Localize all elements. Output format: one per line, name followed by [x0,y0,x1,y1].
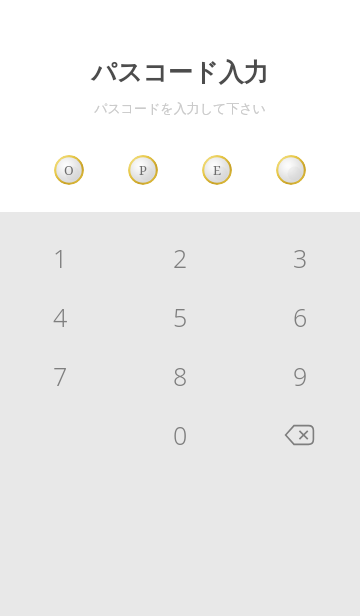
button[interactable]: Backspace [240,416,360,454]
staticText: 3 [293,241,308,275]
staticText: 9 [293,359,308,393]
staticText: P [139,161,147,179]
staticText: O [64,161,74,179]
button[interactable]: 8 [120,357,240,395]
staticText: 8 [173,359,188,393]
staticText: 4 [53,300,68,334]
staticText: E [213,161,222,179]
staticText: パスコードを入力して下さい [94,100,266,116]
button[interactable]: 0 [120,416,240,454]
button[interactable]: O [54,155,84,185]
staticText: 2 [173,241,188,275]
staticText: 0 [173,418,188,452]
button[interactable]: 1 [0,239,120,277]
staticText: 1 [53,241,68,275]
staticText: パスコード入力 [91,57,269,88]
staticText: 7 [53,359,68,393]
button[interactable]: 9 [240,357,360,395]
button[interactable]: 3 [240,239,360,277]
button[interactable]: 6 [240,298,360,336]
button[interactable]: E [202,155,232,185]
staticText: 6 [293,300,308,334]
button[interactable]: 2 [120,239,240,277]
staticText: 5 [173,300,188,334]
button[interactable]: 7 [0,357,120,395]
button[interactable]: 5 [120,298,240,336]
button[interactable]: 4 [0,298,120,336]
button[interactable]: P [128,155,158,185]
button[interactable] [276,155,306,185]
